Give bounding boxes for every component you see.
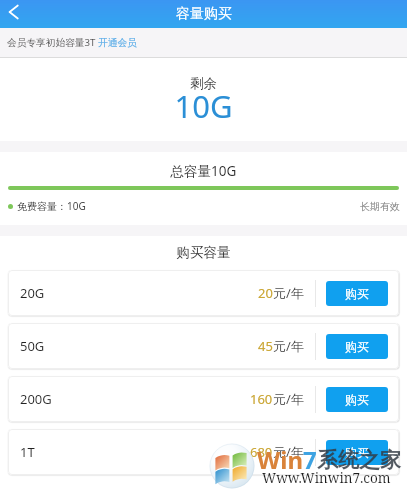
staticText: 200G xyxy=(20,390,52,408)
staticText: 免费容量：10G xyxy=(17,199,86,213)
staticText: 45 xyxy=(258,337,273,355)
button[interactable]: 购买 xyxy=(326,281,388,306)
staticText: 购买 xyxy=(345,445,369,460)
staticText: 1T xyxy=(20,443,35,461)
staticText: 元/年 xyxy=(273,390,304,408)
staticText: 剩余 xyxy=(0,75,407,92)
staticText: 7 xyxy=(303,443,317,476)
staticText: 元/年 xyxy=(273,337,304,355)
button[interactable]: 50G xyxy=(8,323,399,369)
staticText: 10G xyxy=(0,85,407,127)
button[interactable]: 开通会员 xyxy=(98,37,137,49)
staticText: 购买 xyxy=(345,286,369,301)
staticText: 总容量10G xyxy=(0,162,407,180)
button[interactable]: 购买 xyxy=(326,387,388,412)
staticText: 系统之家 xyxy=(317,447,401,473)
button[interactable]: Back xyxy=(0,0,28,28)
button[interactable]: 20G xyxy=(8,270,399,316)
button[interactable]: 购买 xyxy=(326,440,388,465)
staticText: 20G xyxy=(20,284,45,302)
staticText: 680 xyxy=(250,443,273,461)
button[interactable]: 200G xyxy=(8,376,399,422)
staticText: 购买 xyxy=(345,392,369,407)
staticText: 20 xyxy=(258,284,273,302)
staticText: 购买容量 xyxy=(0,244,407,261)
staticText: 160 xyxy=(250,390,273,408)
staticText: 长期有效 xyxy=(360,200,400,213)
button[interactable]: 1T xyxy=(8,429,399,475)
staticText: Win xyxy=(257,443,303,476)
staticText: 元/年 xyxy=(273,443,304,461)
staticText: 元/年 xyxy=(273,284,304,302)
staticText: 50G xyxy=(20,337,45,355)
staticText: Www.Winwin7.com xyxy=(262,469,391,487)
staticText: 购买 xyxy=(345,339,369,354)
button[interactable]: 购买 xyxy=(326,334,388,359)
staticText: 容量购买 xyxy=(176,5,232,23)
staticText: 会员专享初始容量3T xyxy=(7,36,98,49)
